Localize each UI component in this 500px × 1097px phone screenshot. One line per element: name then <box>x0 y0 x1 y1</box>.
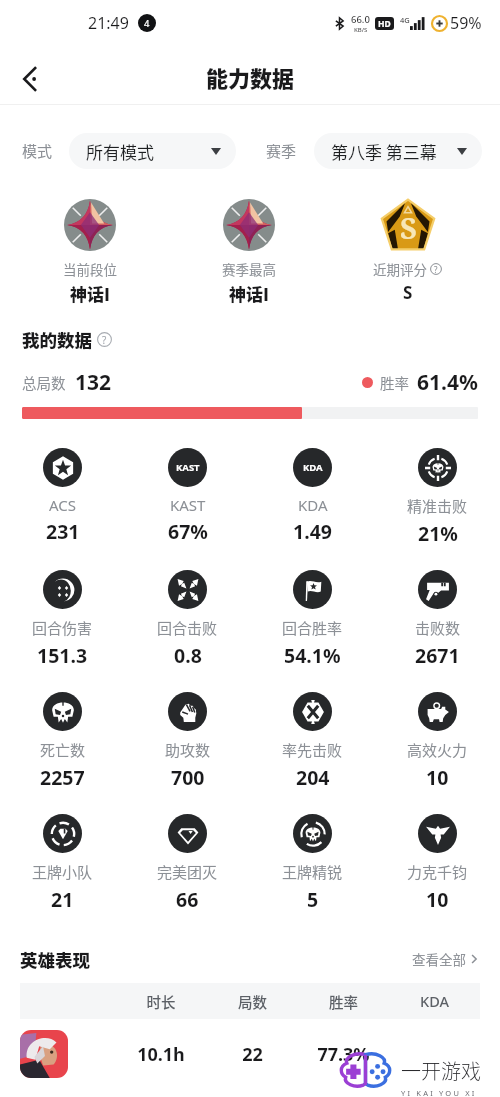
staticText: 当前段位 <box>63 259 117 279</box>
staticText: 21% <box>418 520 458 547</box>
staticText: 66 <box>176 886 199 913</box>
staticText: 151.3 <box>37 642 88 669</box>
staticText: 完美团灭 <box>157 861 218 883</box>
staticText: 22 <box>207 1042 298 1067</box>
staticText: 赛季 <box>266 140 297 162</box>
staticText: 66.0 <box>351 13 370 26</box>
staticText: KAST <box>170 495 206 515</box>
staticText: 所有模式 <box>86 139 154 164</box>
staticText: 0.8 <box>174 642 202 669</box>
staticText: 时长 <box>115 991 207 1012</box>
staticText: 神话I <box>229 281 269 306</box>
staticText: 回合胜率 <box>282 617 343 639</box>
staticText: 10 <box>426 764 449 791</box>
button[interactable]: KAST <box>125 440 250 545</box>
staticText: 5 <box>307 886 319 913</box>
staticText: HD <box>378 18 391 30</box>
staticText: 4 <box>144 17 150 30</box>
staticText: 能力数据 <box>206 61 295 93</box>
button[interactable]: 助攻数 <box>125 684 250 791</box>
staticText: 231 <box>46 518 80 545</box>
button[interactable]: 当前段位 <box>11 191 169 306</box>
staticText: 模式 <box>22 140 53 162</box>
button[interactable]: S <box>328 191 487 304</box>
staticText: 10.1h <box>115 1042 207 1067</box>
staticText: S <box>403 281 413 304</box>
button[interactable]: 赛季最高 <box>169 191 328 306</box>
button[interactable]: ACS <box>0 440 125 545</box>
button[interactable]: 10.1h <box>20 1019 480 1089</box>
button[interactable]: KDA <box>250 440 375 545</box>
staticText: 1.49 <box>293 518 332 545</box>
staticText: 10 <box>426 886 449 913</box>
staticText: 2671 <box>415 642 460 669</box>
button[interactable]: Back <box>8 56 54 102</box>
staticText: 总局数 <box>22 372 66 393</box>
button[interactable]: 回合击败 <box>125 562 250 669</box>
button[interactable]: 所有模式 <box>69 133 236 169</box>
staticText: 高效火力 <box>407 739 468 761</box>
staticText: 英雄表现 <box>20 947 90 972</box>
button[interactable]: 第八季 第三幕 <box>314 133 482 169</box>
staticText: 67% <box>168 518 208 545</box>
staticText: 132 <box>75 368 112 397</box>
button[interactable]: 王牌小队 <box>0 806 125 913</box>
staticText: 700 <box>171 764 205 791</box>
staticText: 死亡数 <box>40 739 86 761</box>
button[interactable]: 率先击败 <box>250 684 375 791</box>
button[interactable]: 回合胜率 <box>250 562 375 669</box>
staticText: 21:49 <box>88 12 129 34</box>
staticText: 胜率 <box>380 372 409 393</box>
staticText: 4G <box>400 15 410 25</box>
staticText: 胜率 <box>298 991 389 1012</box>
staticText: 王牌精锐 <box>282 861 343 883</box>
staticText: ? <box>434 264 438 275</box>
button[interactable]: 精准击败 <box>375 440 500 547</box>
staticText: 查看全部 <box>412 949 466 969</box>
button[interactable]: 死亡数 <box>0 684 125 791</box>
staticText: 神话I <box>70 281 110 306</box>
button[interactable]: Info <box>97 332 112 347</box>
button[interactable]: 完美团灭 <box>125 806 250 913</box>
button[interactable]: 王牌精锐 <box>250 806 375 913</box>
staticText: KAST <box>176 461 200 474</box>
staticText: YI KAI YOU XI <box>401 1088 477 1097</box>
staticText: 59% <box>450 12 482 34</box>
staticText: ? <box>102 333 107 347</box>
staticText: 近期评分 <box>373 259 427 279</box>
button[interactable]: 回合伤害 <box>0 562 125 669</box>
staticText: KDA <box>298 495 328 515</box>
staticText: 一开游戏 <box>401 1056 481 1085</box>
staticText: 回合伤害 <box>32 617 93 639</box>
staticText: 局数 <box>207 991 298 1012</box>
staticText: KB/S <box>354 26 368 34</box>
staticText: KDA <box>303 461 323 474</box>
staticText: 率先击败 <box>282 739 343 761</box>
staticText: 赛季最高 <box>222 259 276 279</box>
staticText: 204 <box>296 764 330 791</box>
button[interactable]: 击败数 <box>375 562 500 669</box>
button[interactable]: 查看全部 <box>412 949 480 969</box>
staticText: 第八季 第三幕 <box>331 139 437 164</box>
staticText: 61.4% <box>417 368 478 397</box>
button[interactable]: 高效火力 <box>375 684 500 791</box>
staticText: 21 <box>51 886 74 913</box>
staticText: 力克千钧 <box>407 861 468 883</box>
staticText: 我的数据 <box>22 327 92 352</box>
staticText: 王牌小队 <box>32 861 93 883</box>
button[interactable]: 力克千钧 <box>375 806 500 913</box>
staticText: 回合击败 <box>157 617 218 639</box>
staticText: S <box>400 208 417 247</box>
staticText: KDA <box>389 991 480 1011</box>
staticText: 77.3% <box>298 1042 389 1067</box>
staticText: ACS <box>49 495 77 515</box>
staticText <box>389 1042 480 1067</box>
staticText: 54.1% <box>284 642 341 669</box>
staticText: 助攻数 <box>165 739 211 761</box>
staticText: 2257 <box>40 764 85 791</box>
staticText: 精准击败 <box>407 495 468 517</box>
staticText: 击败数 <box>415 617 461 639</box>
